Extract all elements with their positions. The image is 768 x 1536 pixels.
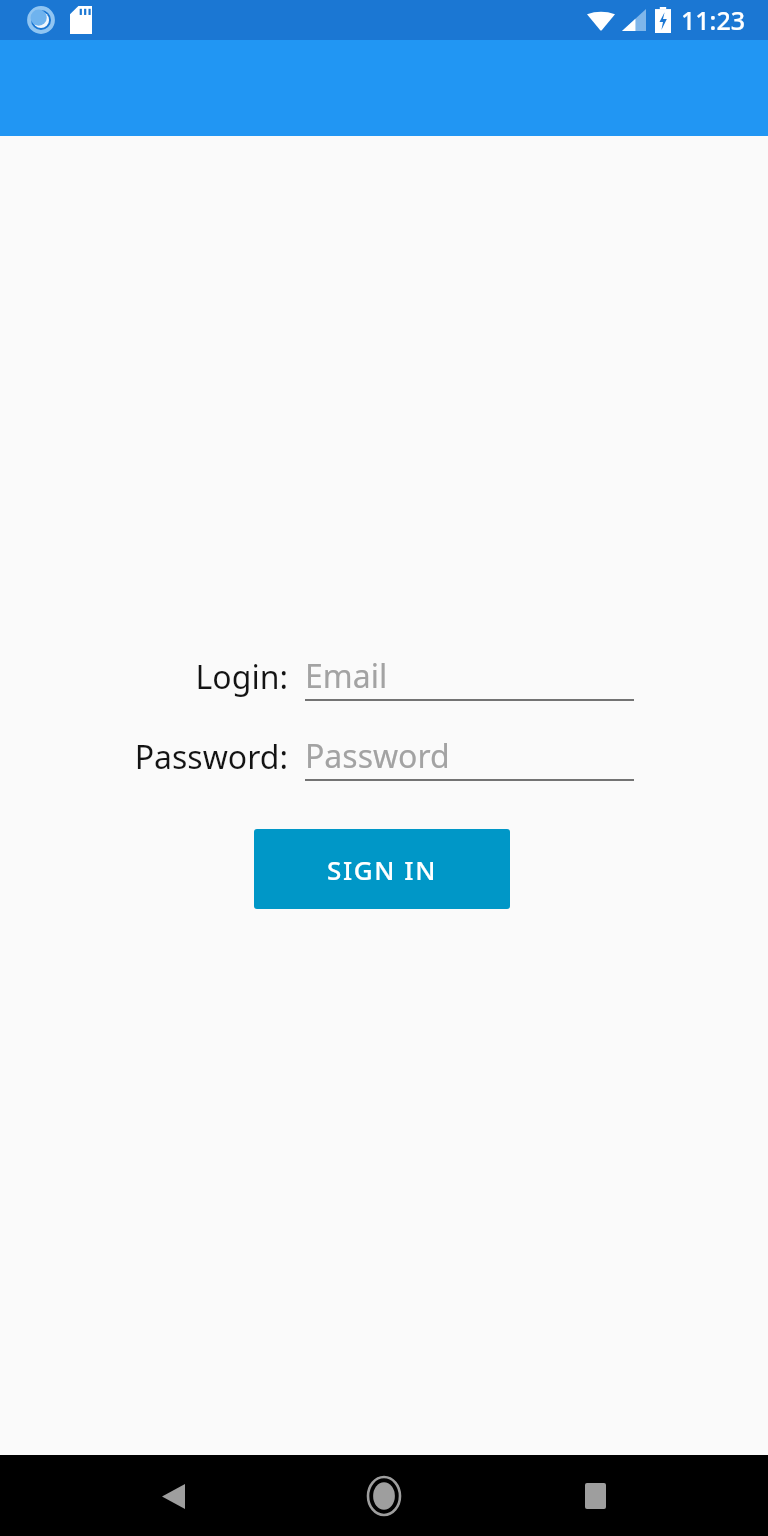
staticText: 11:23 <box>681 3 746 37</box>
staticText: Password <box>305 734 450 778</box>
button[interactable]: Password <box>305 733 634 781</box>
button[interactable]: Back <box>135 1458 211 1534</box>
staticText: Password: <box>134 735 288 779</box>
staticText: Email <box>305 654 388 698</box>
staticText: Login: <box>195 655 288 699</box>
staticText: SIGN IN <box>327 852 437 887</box>
button[interactable]: Recent apps <box>557 1458 633 1534</box>
button[interactable]: SIGN IN <box>254 829 510 909</box>
button[interactable]: Email <box>305 653 634 701</box>
button[interactable]: Home <box>346 1458 422 1534</box>
